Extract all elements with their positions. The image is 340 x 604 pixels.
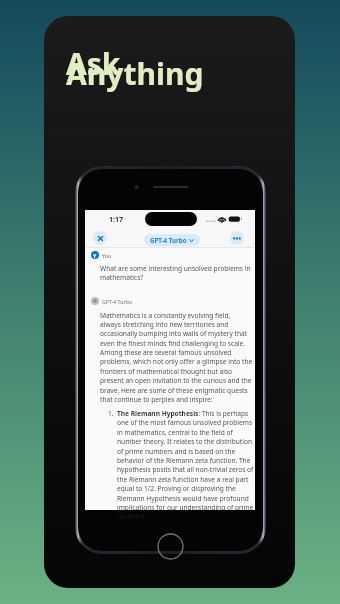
staticText: number theory. It relates to the distrib… — [117, 437, 252, 446]
staticText: behavior of the Riemann zeta function. T… — [117, 456, 251, 465]
staticText: present an open invitation to the curiou… — [100, 376, 252, 385]
staticText: hypothesis posits that all non-trivial z… — [117, 465, 254, 474]
staticText: occasionally bumping into walls of myste… — [100, 329, 248, 338]
staticText: Among these are several famous unsolved — [100, 348, 232, 357]
staticText: You — [102, 252, 112, 259]
staticText: 1. — [108, 409, 114, 418]
button[interactable]: More options — [230, 231, 244, 245]
staticText: that continue to perplex and inspire: — [100, 395, 213, 404]
button[interactable]: Close — [93, 231, 107, 245]
staticText: one of the most famous unsolved problems — [117, 418, 253, 427]
staticText: 1:17 — [109, 215, 123, 225]
staticText: GPT-4 Turbo — [150, 236, 187, 244]
staticText: the Riemann zeta function have a real pa… — [117, 475, 249, 484]
staticText: equal to 1/2. Proving or disproving the — [117, 484, 236, 493]
staticText: The Riemann Hypothesis: This is perhaps — [117, 409, 249, 418]
staticText: numbers. — [117, 512, 147, 521]
staticText: problems, which not only offer a glimpse… — [100, 357, 253, 366]
staticText: Y — [93, 252, 97, 259]
staticText: of prime numbers and is based on the — [117, 447, 236, 456]
staticText: Ask Anything — [66, 43, 204, 93]
staticText: frontiers of mathematical thought but al… — [100, 367, 233, 376]
staticText: Mathematics is a constantly evolving fie… — [100, 311, 231, 320]
staticText: implications for our understanding of pr… — [117, 503, 254, 512]
staticText: mathematics? — [100, 273, 144, 282]
staticText: Riemann Hypothesis would have profound — [117, 494, 249, 503]
staticText: even the finest minds find challenging t… — [100, 339, 246, 348]
staticText: brave. Here are some of these enigmatic … — [100, 386, 248, 395]
staticText: GPT-4 Turbo — [102, 298, 133, 305]
staticText: in mathematics, central to the field of — [117, 428, 233, 437]
staticText: What are some interesting unsolved probl… — [100, 264, 251, 273]
staticText: always stretching into new territories a… — [100, 320, 229, 329]
button[interactable]: GPT-4 Turbo — [144, 234, 200, 246]
